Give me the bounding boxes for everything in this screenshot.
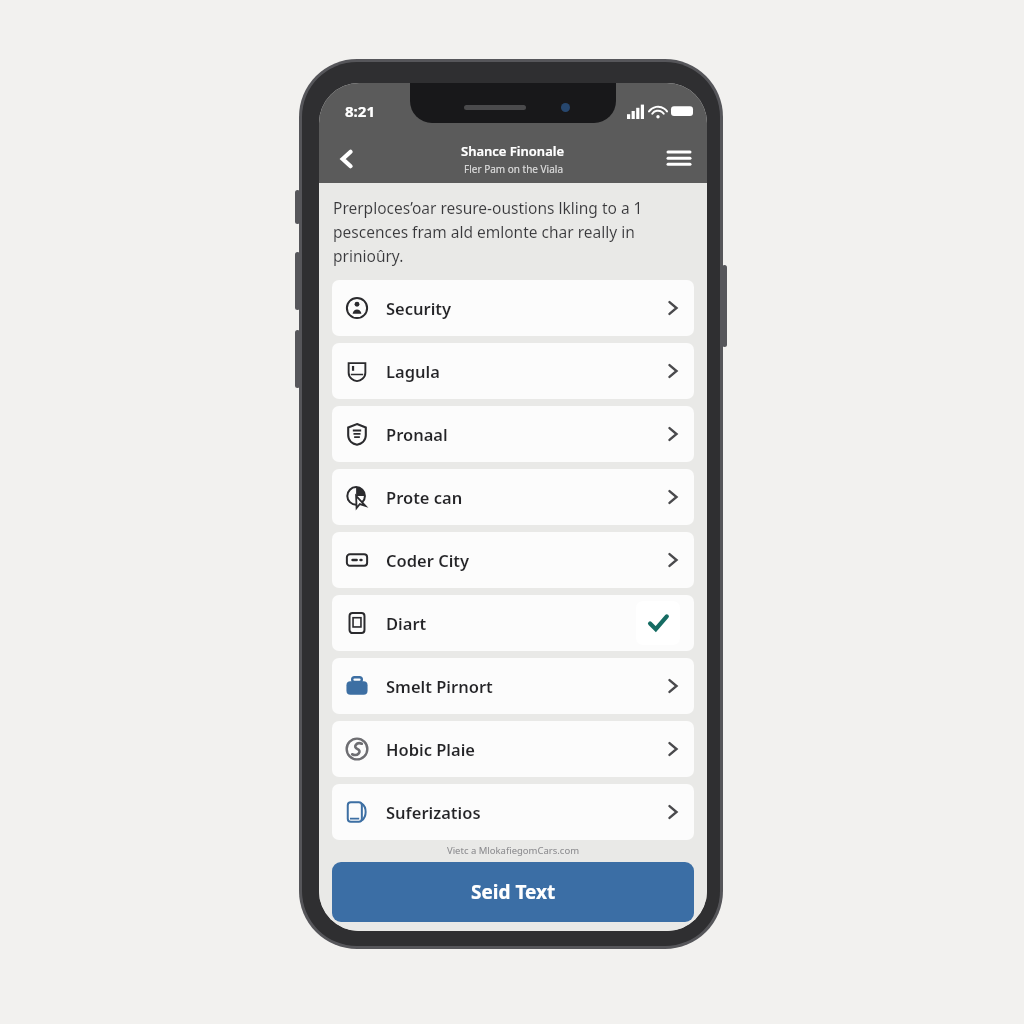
button[interactable]: Diart — [332, 595, 694, 651]
staticText: Fler Pam on the Viala — [464, 162, 563, 176]
staticText: Coder City — [386, 549, 470, 571]
staticText: Security — [386, 297, 452, 319]
staticText: Seid Text — [471, 879, 556, 905]
button[interactable]: Smelt Pirnort — [332, 658, 694, 714]
button[interactable]: Lagula — [332, 343, 694, 399]
button[interactable]: Suferizatios — [332, 784, 694, 840]
staticText: Diart — [386, 612, 427, 634]
button[interactable]: Pronaal — [332, 406, 694, 462]
button[interactable]: Seid Text — [332, 862, 694, 922]
staticText: Hobic Plaie — [386, 738, 476, 760]
staticText: Lagula — [386, 360, 440, 382]
button[interactable]: Back — [327, 139, 367, 179]
staticText: Prerploces’oar resure-oustions lkling to… — [333, 197, 693, 266]
button[interactable]: Menu — [659, 139, 699, 179]
staticText: Prote can — [386, 486, 463, 508]
staticText: Smelt Pirnort — [386, 675, 493, 697]
staticText: Pronaal — [386, 423, 448, 445]
staticText: 8:21 — [345, 101, 375, 121]
button[interactable]: Security — [332, 280, 694, 336]
staticText: Suferizatios — [386, 801, 481, 823]
staticText: Vietc a MlokafiegomCars.com — [319, 844, 707, 857]
button[interactable]: Hobic Plaie — [332, 721, 694, 777]
staticText: Shance Finonale — [461, 142, 565, 160]
button[interactable]: Coder City — [332, 532, 694, 588]
button[interactable]: Prote can — [332, 469, 694, 525]
